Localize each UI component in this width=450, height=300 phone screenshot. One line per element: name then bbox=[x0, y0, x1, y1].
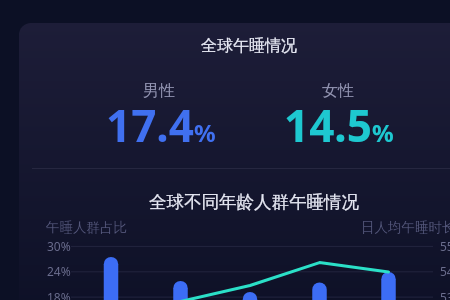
staticText: 24% bbox=[47, 263, 71, 279]
staticText: % bbox=[194, 116, 216, 149]
staticText: 30% bbox=[47, 238, 71, 254]
staticText: 男性 bbox=[143, 81, 175, 101]
staticText: % bbox=[372, 116, 394, 149]
button[interactable]: 女性 bbox=[267, 75, 447, 155]
staticText: 18% bbox=[47, 289, 71, 300]
staticText: 17.4 bbox=[106, 95, 194, 155]
staticText: 午睡人群占比 bbox=[46, 219, 127, 236]
staticText: 日人均午睡时长 bbox=[361, 219, 450, 236]
staticText: 全球不同年龄人群午睡情况 bbox=[149, 191, 359, 213]
staticText: 53 bbox=[440, 289, 450, 300]
staticText: 54 bbox=[440, 263, 450, 279]
staticText: 55 bbox=[440, 238, 450, 254]
button[interactable]: 男性 bbox=[89, 75, 269, 155]
staticText: 14.5 bbox=[284, 95, 372, 155]
staticText: 全球午睡情况 bbox=[201, 36, 297, 56]
button[interactable]: Nap statistics chart by age group bbox=[68, 236, 438, 300]
staticText: 女性 bbox=[322, 81, 354, 101]
